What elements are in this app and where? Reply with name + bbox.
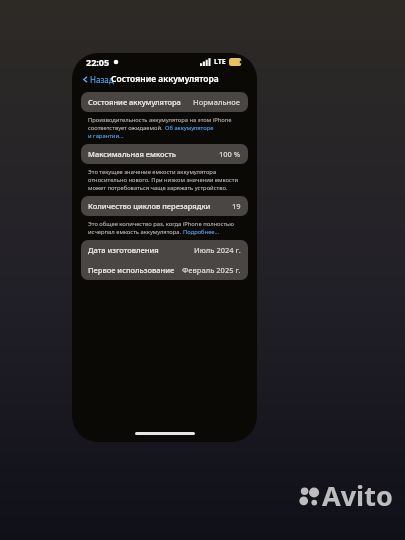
staticText: Это текущее значение емкости аккумулятор…	[88, 168, 217, 176]
staticText: 100 %	[219, 149, 241, 159]
staticText: Состояние аккумулятора	[111, 73, 219, 85]
staticText: относительно нового. При низком значении…	[88, 176, 239, 184]
staticText: Назад	[90, 74, 114, 85]
staticText: Состояние аккумулятора	[88, 97, 181, 107]
staticText: соответствует ожидаемой.	[88, 124, 165, 132]
staticText: Подробнее…	[183, 228, 220, 236]
staticText: и гарантии…	[88, 132, 124, 140]
staticText: Максимальная емкость	[88, 149, 177, 159]
staticText: Нормальное	[193, 97, 241, 107]
staticText: 22:05	[86, 56, 110, 68]
button[interactable]: Состояние аккумулятора	[81, 92, 248, 112]
staticText: Первое использование	[88, 265, 175, 275]
button[interactable]: Назад	[82, 74, 114, 85]
staticText: Производительность аккумулятора на этом …	[88, 116, 232, 124]
staticText: Это общее количество раз, когда iPhone п…	[88, 220, 234, 228]
staticText: Июль 2024 г.	[194, 245, 241, 255]
button[interactable]: Максимальная емкость	[81, 144, 248, 164]
staticText: Февраль 2025 г.	[182, 265, 241, 275]
button[interactable]: Дата изготовления	[81, 240, 248, 260]
staticText: Дата изготовления	[88, 245, 159, 255]
staticText: 19	[232, 201, 241, 211]
staticText: Avito	[322, 477, 393, 514]
staticText: исчерпал емкость аккумулятора.	[88, 228, 183, 236]
button[interactable]: Первое использование	[81, 260, 248, 280]
staticText: может потребоваться чаще заряжать устрой…	[88, 184, 228, 192]
staticText: Количество циклов перезарядки	[88, 201, 211, 211]
staticText: LTE	[214, 57, 226, 67]
button[interactable]: Количество циклов перезарядки	[81, 196, 248, 216]
staticText: Об аккумуляторе	[165, 124, 214, 132]
